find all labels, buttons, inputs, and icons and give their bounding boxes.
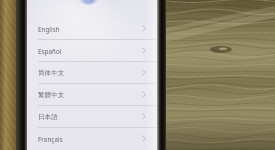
staticText: 繁體中文 bbox=[38, 91, 65, 99]
staticText: Español bbox=[38, 47, 62, 55]
button[interactable]: Español bbox=[27, 40, 157, 61]
other: Open bbox=[142, 69, 146, 76]
button[interactable]: 简体中文 bbox=[27, 62, 157, 83]
staticText: Français bbox=[38, 135, 63, 143]
button[interactable]: 繁體中文 bbox=[27, 84, 157, 105]
other: Open bbox=[142, 135, 146, 142]
staticText: English bbox=[38, 25, 60, 33]
other: Open bbox=[142, 25, 146, 32]
button[interactable]: English bbox=[27, 18, 157, 39]
other: Open bbox=[142, 113, 146, 120]
button[interactable]: Français bbox=[27, 128, 157, 149]
staticText: 日本語 bbox=[38, 113, 58, 121]
button[interactable]: 日本語 bbox=[27, 106, 157, 127]
other: Open bbox=[142, 47, 146, 54]
other: Open bbox=[142, 91, 146, 98]
staticText: 简体中文 bbox=[38, 69, 65, 77]
